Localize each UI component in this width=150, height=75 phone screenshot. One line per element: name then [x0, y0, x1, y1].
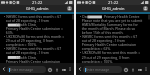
staticText: GHG_admin: [26, 6, 49, 11]
staticText: completion = 100%.: [80, 59, 113, 64]
staticText: • NHSRC forms sent this month = 67: [4, 14, 62, 19]
staticText: out of 28 expecting -1 from: [4, 18, 50, 23]
staticText: Health Clinic,: [4, 22, 38, 27]
staticText: 29 out of 29 expecting, 0 from: [4, 38, 55, 43]
button[interactable]: • NHSRC forms sent this month = 67: [0, 14, 74, 63]
button[interactable]: Back: [1, 66, 7, 72]
button[interactable]: Emoji: [46, 65, 53, 74]
staticText: • NHSRC forms sent this month = 67: [4, 46, 62, 51]
staticText: 21:22: [32, 0, 43, 5]
staticText: 29 out of 29 expecting, 0 from: [80, 55, 131, 60]
button[interactable]: Camera: [136, 65, 143, 74]
button[interactable]: Back: [77, 66, 83, 72]
button[interactable]: Enter message: [7, 66, 46, 73]
button[interactable]: Enter message: [83, 66, 122, 73]
button[interactable]: Camera: [60, 65, 67, 74]
button[interactable]: Account: [143, 6, 148, 11]
staticText: out of 28 expecting -1 from: [4, 50, 50, 55]
staticText: completion = 63%.: [80, 46, 112, 51]
staticText: Primary Health Centre submission =: [4, 26, 64, 31]
staticText: completion = 100%.: [4, 42, 37, 47]
staticText: • Dear Primary Health Centre: [80, 14, 140, 19]
staticText: Health Clinic,: [4, 55, 38, 60]
staticText: 21:22: [108, 0, 119, 5]
staticText: • NHSRC forms sent this month = 67: [80, 34, 138, 39]
staticText: before 15th of this month.: [80, 30, 124, 35]
staticText: Primary Health Centre submission: [80, 42, 137, 47]
button[interactable]: • Dear Primary Health Centre: [76, 14, 150, 63]
staticText: Enter message: [7, 67, 34, 72]
button[interactable]: Voice message: [129, 65, 136, 74]
button[interactable]: Voice message: [53, 65, 60, 74]
button[interactable]: Emoji: [122, 65, 129, 74]
staticText: 63%.: [4, 30, 14, 35]
staticText: the month of March. Please do so: [80, 26, 136, 31]
staticText: out of 28 expecting -1 from: [80, 38, 126, 43]
staticText: • UKCROFulfil forms sent this month =: [4, 34, 65, 39]
button[interactable]: More options: [67, 65, 73, 73]
staticText: Enter message: [83, 67, 110, 72]
button[interactable]: Account: [67, 6, 72, 11]
staticText: Please note that you are yet to submit: [80, 18, 143, 23]
staticText: HMIS/Mortality Summary forms for: [80, 22, 138, 27]
staticText: GHG_admin: [102, 6, 125, 11]
button[interactable]: More options: [143, 65, 149, 73]
staticText: Primary Health Centre submission: [4, 59, 61, 64]
staticText: • UKCROFulfil forms sent this month =: [80, 50, 141, 55]
